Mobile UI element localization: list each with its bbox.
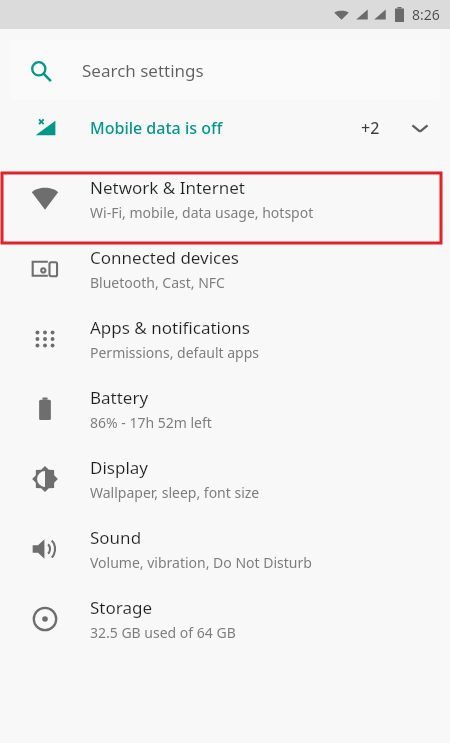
staticText: 86% - 17h 52m left xyxy=(90,413,212,432)
button[interactable]: Connected devices xyxy=(0,234,450,304)
staticText: Volume, vibration, Do Not Disturb xyxy=(90,553,312,572)
button[interactable]: Mobile data is off xyxy=(0,100,450,156)
staticText: Permissions, default apps xyxy=(90,343,260,362)
staticText: Sound xyxy=(90,526,142,549)
staticText: Battery xyxy=(90,386,149,409)
button[interactable]: Search xyxy=(10,40,440,100)
button[interactable]: Expand xyxy=(402,110,438,146)
staticText: +2 xyxy=(361,117,380,139)
staticText: Apps & notifications xyxy=(90,316,250,339)
button[interactable]: Network & Internet xyxy=(0,164,450,234)
other: Search xyxy=(30,60,52,82)
staticText: Bluetooth, Cast, NFC xyxy=(90,273,225,292)
staticText: Display xyxy=(90,456,148,479)
staticText: Search settings xyxy=(82,59,204,82)
button[interactable]: Battery xyxy=(0,374,450,444)
staticText: Mobile data is off xyxy=(90,117,223,139)
button[interactable]: Storage xyxy=(0,584,450,654)
button[interactable]: Apps & notifications xyxy=(0,304,450,374)
button[interactable]: Display xyxy=(0,444,450,514)
staticText: Wallpaper, sleep, font size xyxy=(90,483,260,502)
staticText: Network & Internet xyxy=(90,176,245,199)
staticText: 32.5 GB used of 64 GB xyxy=(90,623,236,642)
button[interactable]: Sound xyxy=(0,514,450,584)
staticText: Connected devices xyxy=(90,246,240,269)
staticText: 8:26 xyxy=(412,5,440,24)
staticText: Storage xyxy=(90,596,153,619)
staticText: Wi-Fi, mobile, data usage, hotspot xyxy=(90,203,314,222)
